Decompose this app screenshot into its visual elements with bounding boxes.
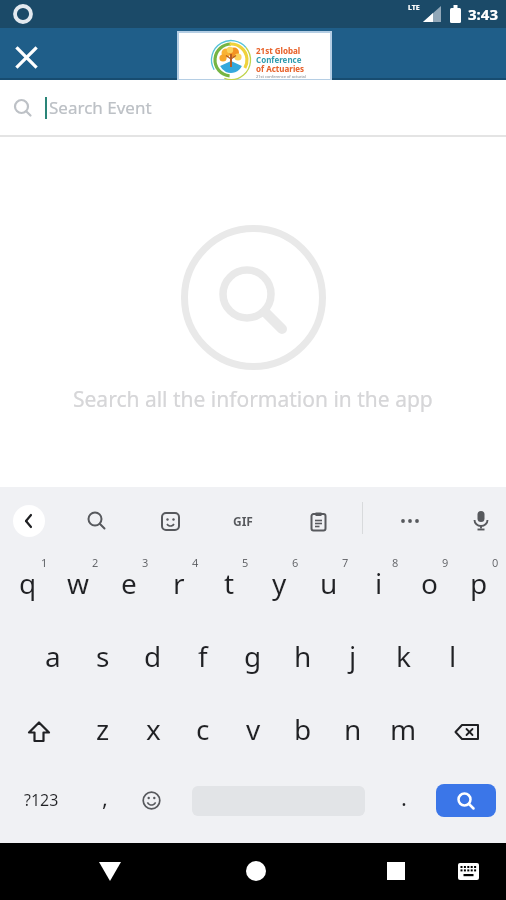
button[interactable] [150,501,190,541]
staticText: u [320,564,338,602]
staticText: Search Event [49,96,152,119]
staticText: , [102,782,108,812]
staticText: p [470,564,488,602]
staticText: . [401,782,407,812]
staticText: y [272,564,287,602]
button[interactable]: u [304,549,354,622]
staticText: 5 [242,555,249,570]
staticText: e [121,564,137,602]
staticText: k [396,637,411,675]
button[interactable]: r [154,549,204,622]
staticText: 6 [292,555,299,570]
button[interactable] [436,784,496,817]
staticText: Search all the information in the app [73,385,433,414]
staticText: 3 [142,555,149,570]
button[interactable]: z [78,695,128,768]
staticText: 0 [492,555,499,570]
button[interactable]: n [328,695,378,768]
button[interactable] [238,853,274,889]
button[interactable]: q [2,549,53,622]
staticText: of Actuaries [256,63,305,74]
staticText: 21st conference of acturial [256,74,306,79]
button[interactable] [428,695,506,768]
button[interactable]: . [384,768,424,826]
button[interactable] [13,505,45,537]
button[interactable] [298,501,338,541]
staticText: f [198,637,208,675]
button[interactable]: s [78,622,128,695]
button[interactable]: 21st Global [178,32,331,80]
button[interactable]: k [378,622,428,695]
staticText: x [146,710,161,748]
staticText: l [449,637,457,675]
staticText: 4 [192,555,199,570]
staticText: ?123 [24,789,59,811]
button[interactable]: p [454,549,504,622]
button[interactable]: o [404,549,454,622]
staticText: 9 [442,555,449,570]
staticText: h [294,637,312,675]
staticText: a [45,637,61,675]
staticText: 2 [92,555,99,570]
button[interactable]: l [428,622,478,695]
button[interactable]: GIF [223,501,263,541]
button[interactable]: ?123 [8,768,74,832]
staticText: i [375,564,383,602]
button[interactable]: , [85,768,125,826]
button[interactable] [131,768,171,832]
staticText: q [19,564,37,602]
button[interactable]: x [128,695,178,768]
button[interactable]: d [128,622,178,695]
button[interactable]: b [278,695,328,768]
button[interactable]: y [254,549,304,622]
button[interactable]: h [278,622,328,695]
staticText: LTE [408,3,420,13]
button[interactable]: i [354,549,404,622]
button[interactable]: g [228,622,278,695]
staticText: n [344,710,362,748]
button[interactable] [378,853,414,889]
button[interactable]: e [104,549,154,622]
staticText: Conference [256,54,302,65]
staticText: r [173,564,185,602]
button[interactable]: j [328,622,378,695]
button[interactable]: w [53,549,104,622]
staticText: c [196,710,210,748]
staticText: 8 [392,555,399,570]
staticText: s [96,637,110,675]
button[interactable]: f [178,622,228,695]
staticText: 3:43 [468,4,498,24]
button[interactable]: v [228,695,278,768]
staticText: z [96,710,110,748]
button[interactable] [12,43,40,71]
button[interactable]: a [28,622,78,695]
button[interactable]: Search Event [0,80,506,135]
button[interactable]: c [178,695,228,768]
button[interactable]: t [204,549,254,622]
staticText: w [67,564,90,602]
staticText: 7 [342,555,349,570]
staticText: m [390,710,417,748]
staticText: v [246,710,261,748]
button[interactable] [461,501,501,541]
staticText: 1 [41,555,48,570]
button[interactable] [92,853,128,889]
staticText: j [349,637,357,675]
button[interactable] [0,695,78,768]
staticText: GIF [233,513,253,529]
staticText: 21st Global [256,45,301,56]
button[interactable] [390,501,430,541]
staticText: b [294,710,312,748]
staticText: g [244,637,262,675]
staticText: d [144,637,162,675]
staticText: o [421,564,438,602]
button[interactable]: m [378,695,428,768]
button[interactable] [77,501,117,541]
button[interactable] [450,853,486,889]
staticText: t [224,564,235,602]
